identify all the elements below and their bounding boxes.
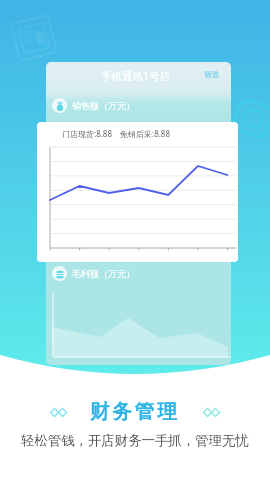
staticText: 筛选 [204,70,219,79]
button[interactable]: 手机通讯1号店 [101,67,171,85]
staticText: 手机通讯1号店 [101,69,171,83]
staticText: 销售额（万元） [72,100,135,111]
staticText: 毛利额（万元） [72,268,135,279]
button[interactable]: 毛利额（万元） [52,266,135,281]
staticText: 门店现货:8.88 [62,128,113,139]
button[interactable]: 销售额（万元） [52,98,135,113]
staticText: 免销后采:8.88 [120,128,171,139]
button[interactable]: 筛选 [204,70,219,79]
staticText: 轻松管钱，开店财务一手抓，管理无忧 [21,432,249,449]
staticText: 财务管理 [90,399,180,424]
